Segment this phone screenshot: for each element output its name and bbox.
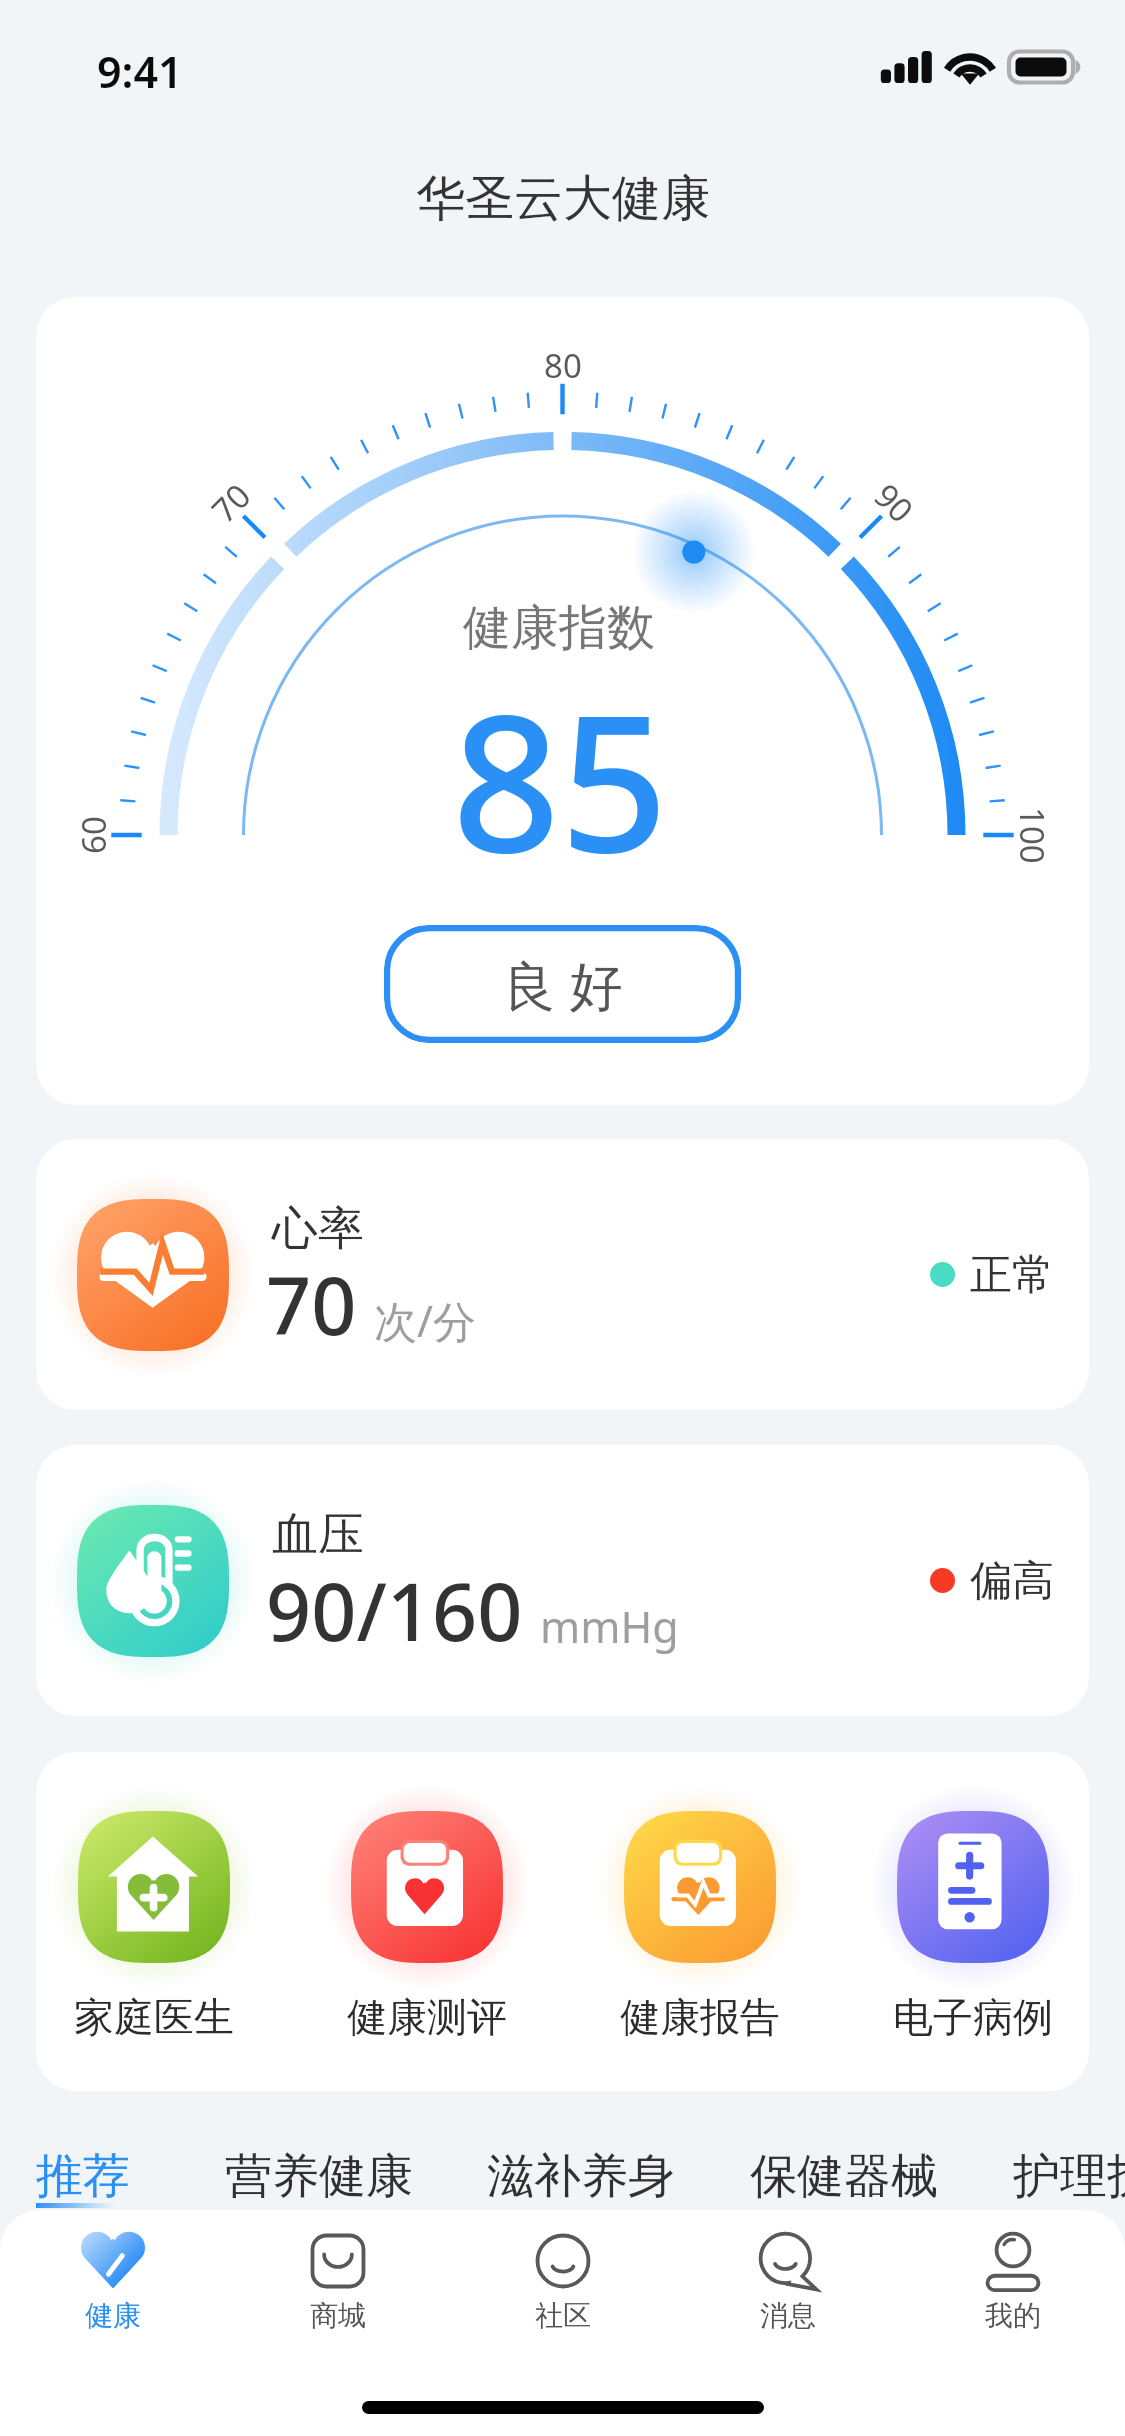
staticText: 偏高 [970,1555,1054,1608]
button[interactable]: 营养健康 [225,2147,413,2206]
staticText: 华圣云大健康 [416,168,710,230]
button[interactable]: 家庭医生 [44,1795,264,2042]
staticText: 社区 [535,2298,591,2333]
staticText: 良 好 [503,948,623,1020]
staticText: 血压 [272,1506,364,1564]
staticText: mmHg [540,1597,679,1656]
staticText: 70 [201,473,257,529]
staticText: 营养健康 [225,2147,413,2206]
staticText: 家庭医生 [74,1992,234,2042]
staticText: 电子病例 [893,1992,1053,2042]
staticText: 我的 [985,2298,1041,2333]
staticText: 健康指数 [463,598,655,658]
button[interactable]: 滋补养身 [487,2147,675,2206]
staticText: 90 [868,473,924,529]
staticText: 商城 [310,2298,366,2333]
button[interactable]: 健康测评 [317,1795,537,2042]
staticText: 滋补养身 [487,2147,675,2206]
button[interactable]: 社区 [473,2228,653,2333]
staticText: 正常 [970,1249,1054,1302]
button[interactable]: 健康 [23,2228,203,2333]
staticText: 80 [544,343,582,383]
button[interactable]: 健康报告 [590,1795,810,2042]
button[interactable]: 商城 [248,2228,428,2333]
button[interactable]: 良 好 [384,925,741,1043]
button[interactable]: 心率 [36,1139,1089,1410]
button[interactable]: 护理护具 [1013,2147,1125,2206]
staticText: 推荐 [36,2147,130,2206]
staticText: 100 [1015,807,1055,864]
staticText: 90/160 [266,1557,523,1665]
staticText: 60 [71,816,111,854]
button[interactable]: 消息 [698,2228,878,2333]
staticText: 保健器械 [750,2147,938,2206]
staticText: 健康报告 [620,1992,780,2042]
staticText: 85 [452,650,669,907]
button[interactable]: 我的 [923,2228,1103,2333]
staticText: 次/分 [374,1291,476,1350]
staticText: 9:41 [97,42,183,101]
staticText: 70 [266,1251,357,1359]
button[interactable]: 血压 [36,1445,1089,1716]
staticText: 消息 [760,2298,816,2333]
button[interactable]: 电子病例 [863,1795,1083,2042]
button[interactable]: 保健器械 [750,2147,938,2206]
button[interactable]: 推荐 [36,2147,130,2206]
staticText: 健康 [85,2298,141,2333]
staticText: 护理护具 [1013,2147,1125,2206]
staticText: 健康测评 [347,1992,507,2042]
staticText: 心率 [272,1200,364,1258]
